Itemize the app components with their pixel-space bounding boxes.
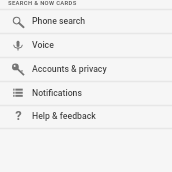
other: Notifications (10, 86, 26, 102)
other: Help & feedback (10, 109, 26, 125)
staticText: Phone search (32, 16, 86, 26)
staticText: Accounts & privacy (32, 64, 107, 74)
staticText: Help & feedback (32, 111, 96, 121)
staticText: SEARCH & NOW CARDS (8, 0, 77, 7)
button[interactable]: Help & feedback (0, 106, 172, 128)
staticText: Notifications (32, 88, 82, 98)
button[interactable]: Notifications (0, 82, 172, 105)
staticText: Voice (32, 40, 54, 50)
other: Accounts & privacy (10, 62, 26, 78)
other: Voice (10, 38, 26, 54)
other: Phone search (10, 14, 26, 30)
staticText: ? (15, 108, 22, 123)
button[interactable]: Accounts & privacy (0, 58, 172, 81)
button[interactable]: Phone search (0, 10, 172, 33)
button[interactable]: Voice (0, 34, 172, 57)
